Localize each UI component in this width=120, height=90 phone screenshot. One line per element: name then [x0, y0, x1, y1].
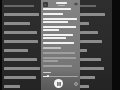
button[interactable]: More options	[74, 2, 78, 6]
button[interactable]: Seek bar	[43, 75, 78, 77]
button[interactable]: Connect to a device	[74, 82, 78, 86]
button[interactable]: Pause	[54, 79, 63, 88]
button[interactable]: Album art	[43, 2, 48, 7]
